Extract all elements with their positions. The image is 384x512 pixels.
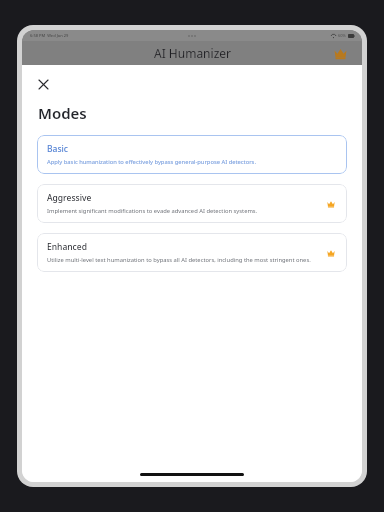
staticText: 60%: [338, 33, 346, 38]
button[interactable]: Basic: [37, 135, 347, 174]
staticText: Implement significant modifications to e…: [47, 207, 258, 215]
staticText: Apply basic humanization to effectively …: [47, 158, 256, 166]
staticText: 6:58 PM Wed Jan 29: [30, 33, 69, 38]
staticText: Utilize multi-level text humanization to…: [47, 256, 311, 264]
button[interactable]: Enhanced: [37, 233, 347, 272]
staticText: Basic: [47, 143, 69, 155]
button[interactable]: Premium: [330, 43, 350, 63]
staticText: AI Humanizer: [154, 45, 231, 61]
button[interactable]: Close: [32, 73, 54, 95]
staticText: Enhanced: [47, 241, 87, 253]
staticText: Aggressive: [47, 192, 92, 204]
button[interactable]: Aggressive: [37, 184, 347, 223]
staticText: Modes: [38, 103, 87, 123]
